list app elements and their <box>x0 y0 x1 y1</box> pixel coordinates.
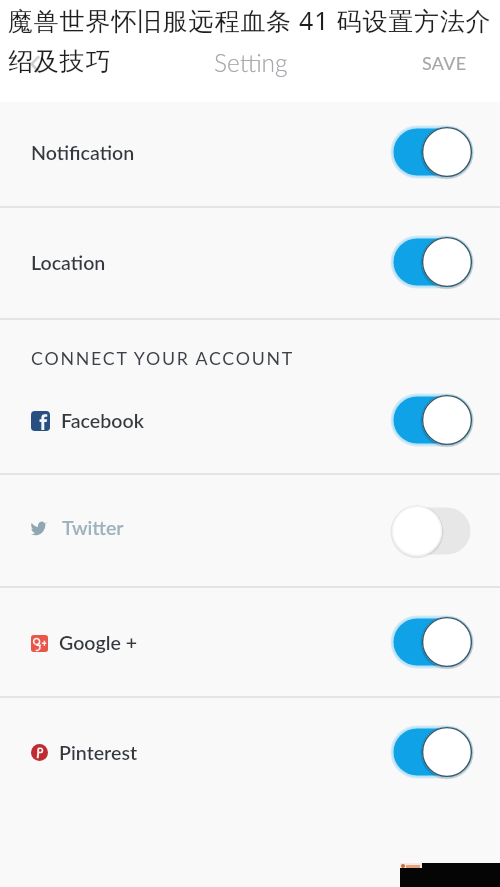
staticText: 魔兽世界怀旧服远程血条 41 码设置方法介 绍及技巧 <box>8 3 492 77</box>
button[interactable]: Google + <box>0 588 500 696</box>
staticText: Location <box>31 251 106 275</box>
staticText: Facebook <box>61 409 144 433</box>
staticText: Twitter <box>62 516 124 540</box>
staticText: Setting <box>214 48 288 77</box>
button[interactable]: Notification <box>0 102 500 206</box>
staticText: Google + <box>59 631 138 655</box>
button[interactable]: Back <box>15 43 57 85</box>
staticText: CONNECT YOUR ACCOUNT <box>31 347 295 368</box>
button[interactable]: Pinterest <box>0 698 500 805</box>
staticText: Pinterest <box>59 741 138 765</box>
button[interactable]: Twitter <box>0 475 500 586</box>
button[interactable]: Location <box>0 208 500 318</box>
button[interactable]: Facebook <box>0 367 500 473</box>
button[interactable]: SAVE <box>414 44 475 82</box>
staticText: Notification <box>31 141 135 165</box>
staticText: SAVE <box>422 52 467 74</box>
